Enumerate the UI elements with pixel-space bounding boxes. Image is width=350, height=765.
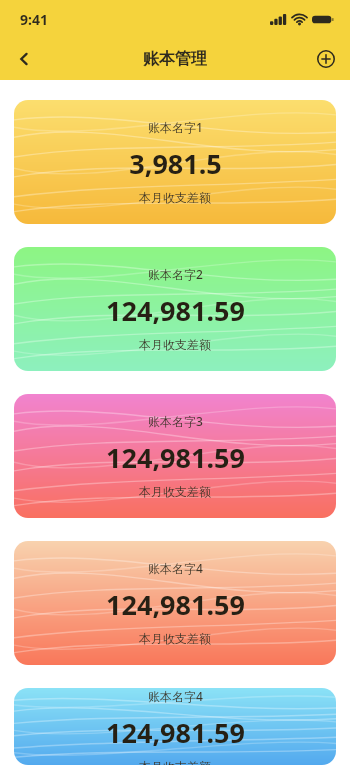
button[interactable]: 账本名字4: [14, 688, 336, 765]
staticText: 9:41: [20, 10, 48, 29]
staticText: 账本管理: [143, 49, 207, 69]
staticText: 账本名字4: [148, 688, 203, 704]
button[interactable]: Back: [0, 38, 48, 80]
button[interactable]: Add account book: [302, 38, 350, 80]
button[interactable]: 账本名字3: [14, 394, 336, 518]
button[interactable]: 账本名字1: [14, 100, 336, 224]
staticText: 账本名字1: [148, 119, 203, 135]
staticText: 本月收支差额: [139, 337, 211, 352]
staticText: 账本名字3: [148, 413, 203, 429]
button[interactable]: 账本名字4: [14, 541, 336, 665]
staticText: 124,981.59: [106, 439, 245, 476]
staticText: 本月收支差额: [139, 190, 211, 205]
staticText: 账本名字2: [148, 266, 203, 282]
staticText: 本月收支差额: [139, 759, 211, 765]
button[interactable]: 账本名字2: [14, 247, 336, 371]
staticText: 124,981.59: [106, 586, 245, 623]
staticText: 本月收支差额: [139, 484, 211, 499]
staticText: 124,981.59: [106, 714, 245, 751]
staticText: 账本名字4: [148, 560, 203, 576]
staticText: 3,981.5: [129, 145, 222, 182]
staticText: 本月收支差额: [139, 631, 211, 646]
staticText: 124,981.59: [106, 292, 245, 329]
